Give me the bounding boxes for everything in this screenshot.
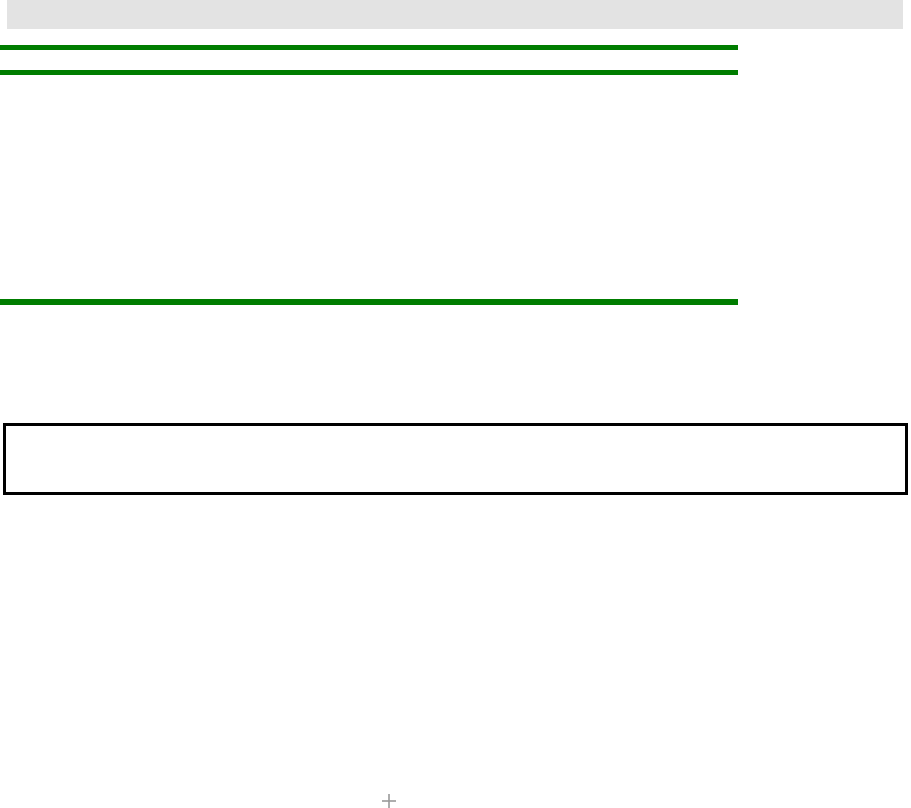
button[interactable]: Header banner	[0, 0, 911, 808]
